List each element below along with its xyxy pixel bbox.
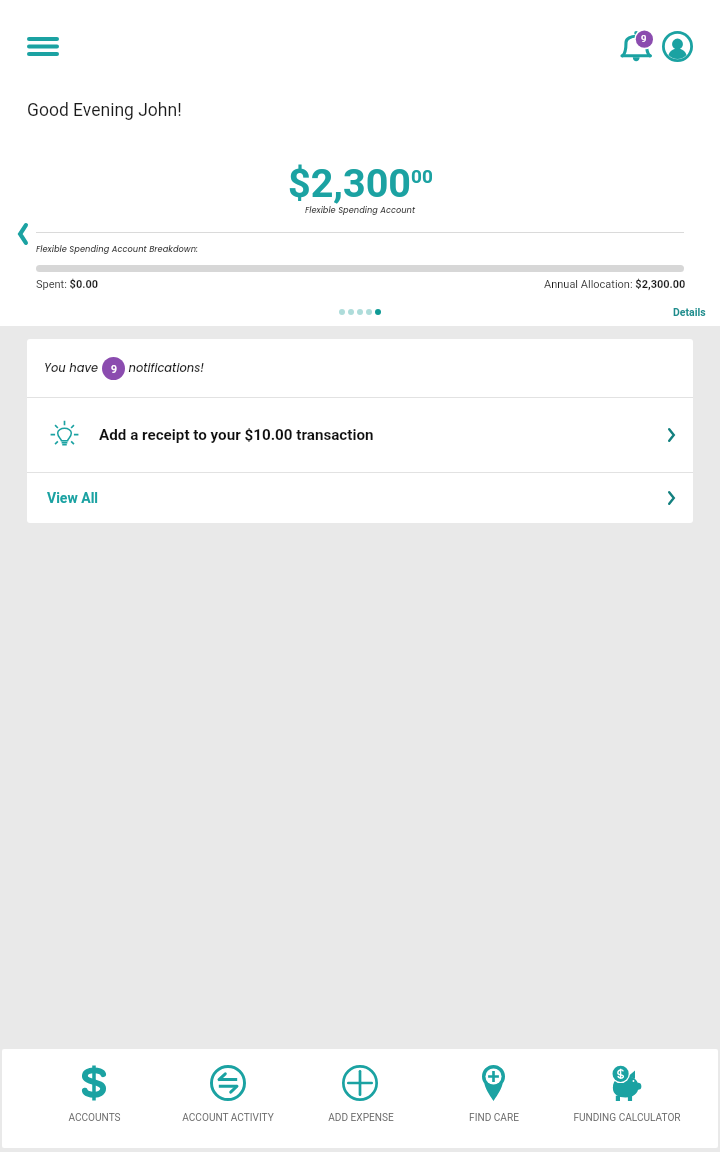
- staticText: 9: [641, 33, 647, 44]
- button[interactable]: Profile: [655, 24, 700, 69]
- button[interactable]: FIND CARE: [427, 1049, 560, 1148]
- staticText: View All: [47, 490, 99, 506]
- staticText: You have: [44, 360, 102, 376]
- staticText: ACCOUNT ACTIVITY: [182, 1112, 274, 1124]
- button[interactable]: View All: [27, 473, 693, 523]
- staticText: Add a receipt to your $10.00 transaction: [99, 426, 374, 444]
- staticText: notifications!: [125, 360, 205, 376]
- button[interactable]: You have: [27, 339, 693, 397]
- staticText: ADD EXPENSE: [328, 1112, 394, 1124]
- staticText: ACCOUNTS: [68, 1112, 121, 1124]
- button[interactable]: ACCOUNTS: [27, 1049, 161, 1148]
- staticText: FUNDING CALCULATOR: [573, 1112, 681, 1124]
- staticText: $2,30000: [288, 160, 433, 206]
- staticText: Flexible Spending Account: [305, 204, 416, 216]
- staticText: Spent: $0.00: [36, 278, 99, 291]
- staticText: FIND CARE: [469, 1112, 519, 1124]
- button[interactable]: Add a receipt to your $10.00 transaction: [27, 398, 693, 472]
- button[interactable]: ADD EXPENSE: [294, 1049, 427, 1148]
- button[interactable]: FUNDING CALCULATOR: [560, 1049, 693, 1148]
- button[interactable]: Menu: [14, 20, 71, 72]
- button[interactable]: ACCOUNT ACTIVITY: [161, 1049, 294, 1148]
- button[interactable]: Previous account: [7, 219, 39, 249]
- staticText: Details: [673, 306, 706, 318]
- button[interactable]: Details: [668, 304, 711, 320]
- button[interactable]: Notifications, 9 new: [611, 19, 665, 73]
- staticText: Flexible Spending Account Breakdown:: [36, 243, 199, 255]
- staticText: 9: [111, 363, 117, 375]
- staticText: Annual Allocation: $2,300.00: [544, 278, 686, 291]
- staticText: Good Evening John!: [27, 100, 182, 121]
